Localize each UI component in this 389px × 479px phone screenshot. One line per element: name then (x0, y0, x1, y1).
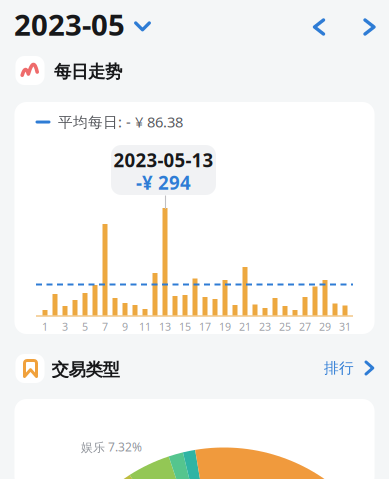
button[interactable]: 2023-05 (14, 5, 151, 44)
staticText: 5 (82, 319, 88, 334)
staticText: 9 (122, 319, 128, 334)
staticText: 交易类型 (51, 359, 119, 380)
staticText: 25 (279, 319, 291, 334)
staticText: 19 (219, 319, 231, 334)
staticText: 1 (42, 319, 48, 334)
staticText: 17 (199, 319, 211, 334)
staticText: 3 (62, 319, 68, 334)
staticText: 29 (319, 319, 331, 334)
staticText: 每日走势 (54, 61, 122, 82)
staticText: 27 (299, 319, 311, 334)
staticText: 31 (339, 319, 351, 334)
staticText: 21 (239, 319, 251, 334)
staticText: 11 (139, 319, 151, 334)
staticText: 7 (102, 319, 108, 334)
staticText: 2023-05-13 (113, 148, 213, 172)
button[interactable]: 排行 (324, 359, 375, 377)
staticText: 2023-05 (14, 5, 125, 44)
staticText: 排行 (324, 359, 354, 377)
button[interactable]: Next month (352, 10, 386, 44)
staticText: 娱乐 7.32% (81, 439, 142, 455)
button[interactable]: Previous month (302, 10, 336, 44)
staticText: 13 (159, 319, 171, 334)
staticText: 平均每日: - ¥ 86.38 (58, 112, 183, 131)
staticText: 15 (179, 319, 191, 334)
staticText: -¥ 294 (136, 170, 191, 195)
staticText: 23 (259, 319, 271, 334)
